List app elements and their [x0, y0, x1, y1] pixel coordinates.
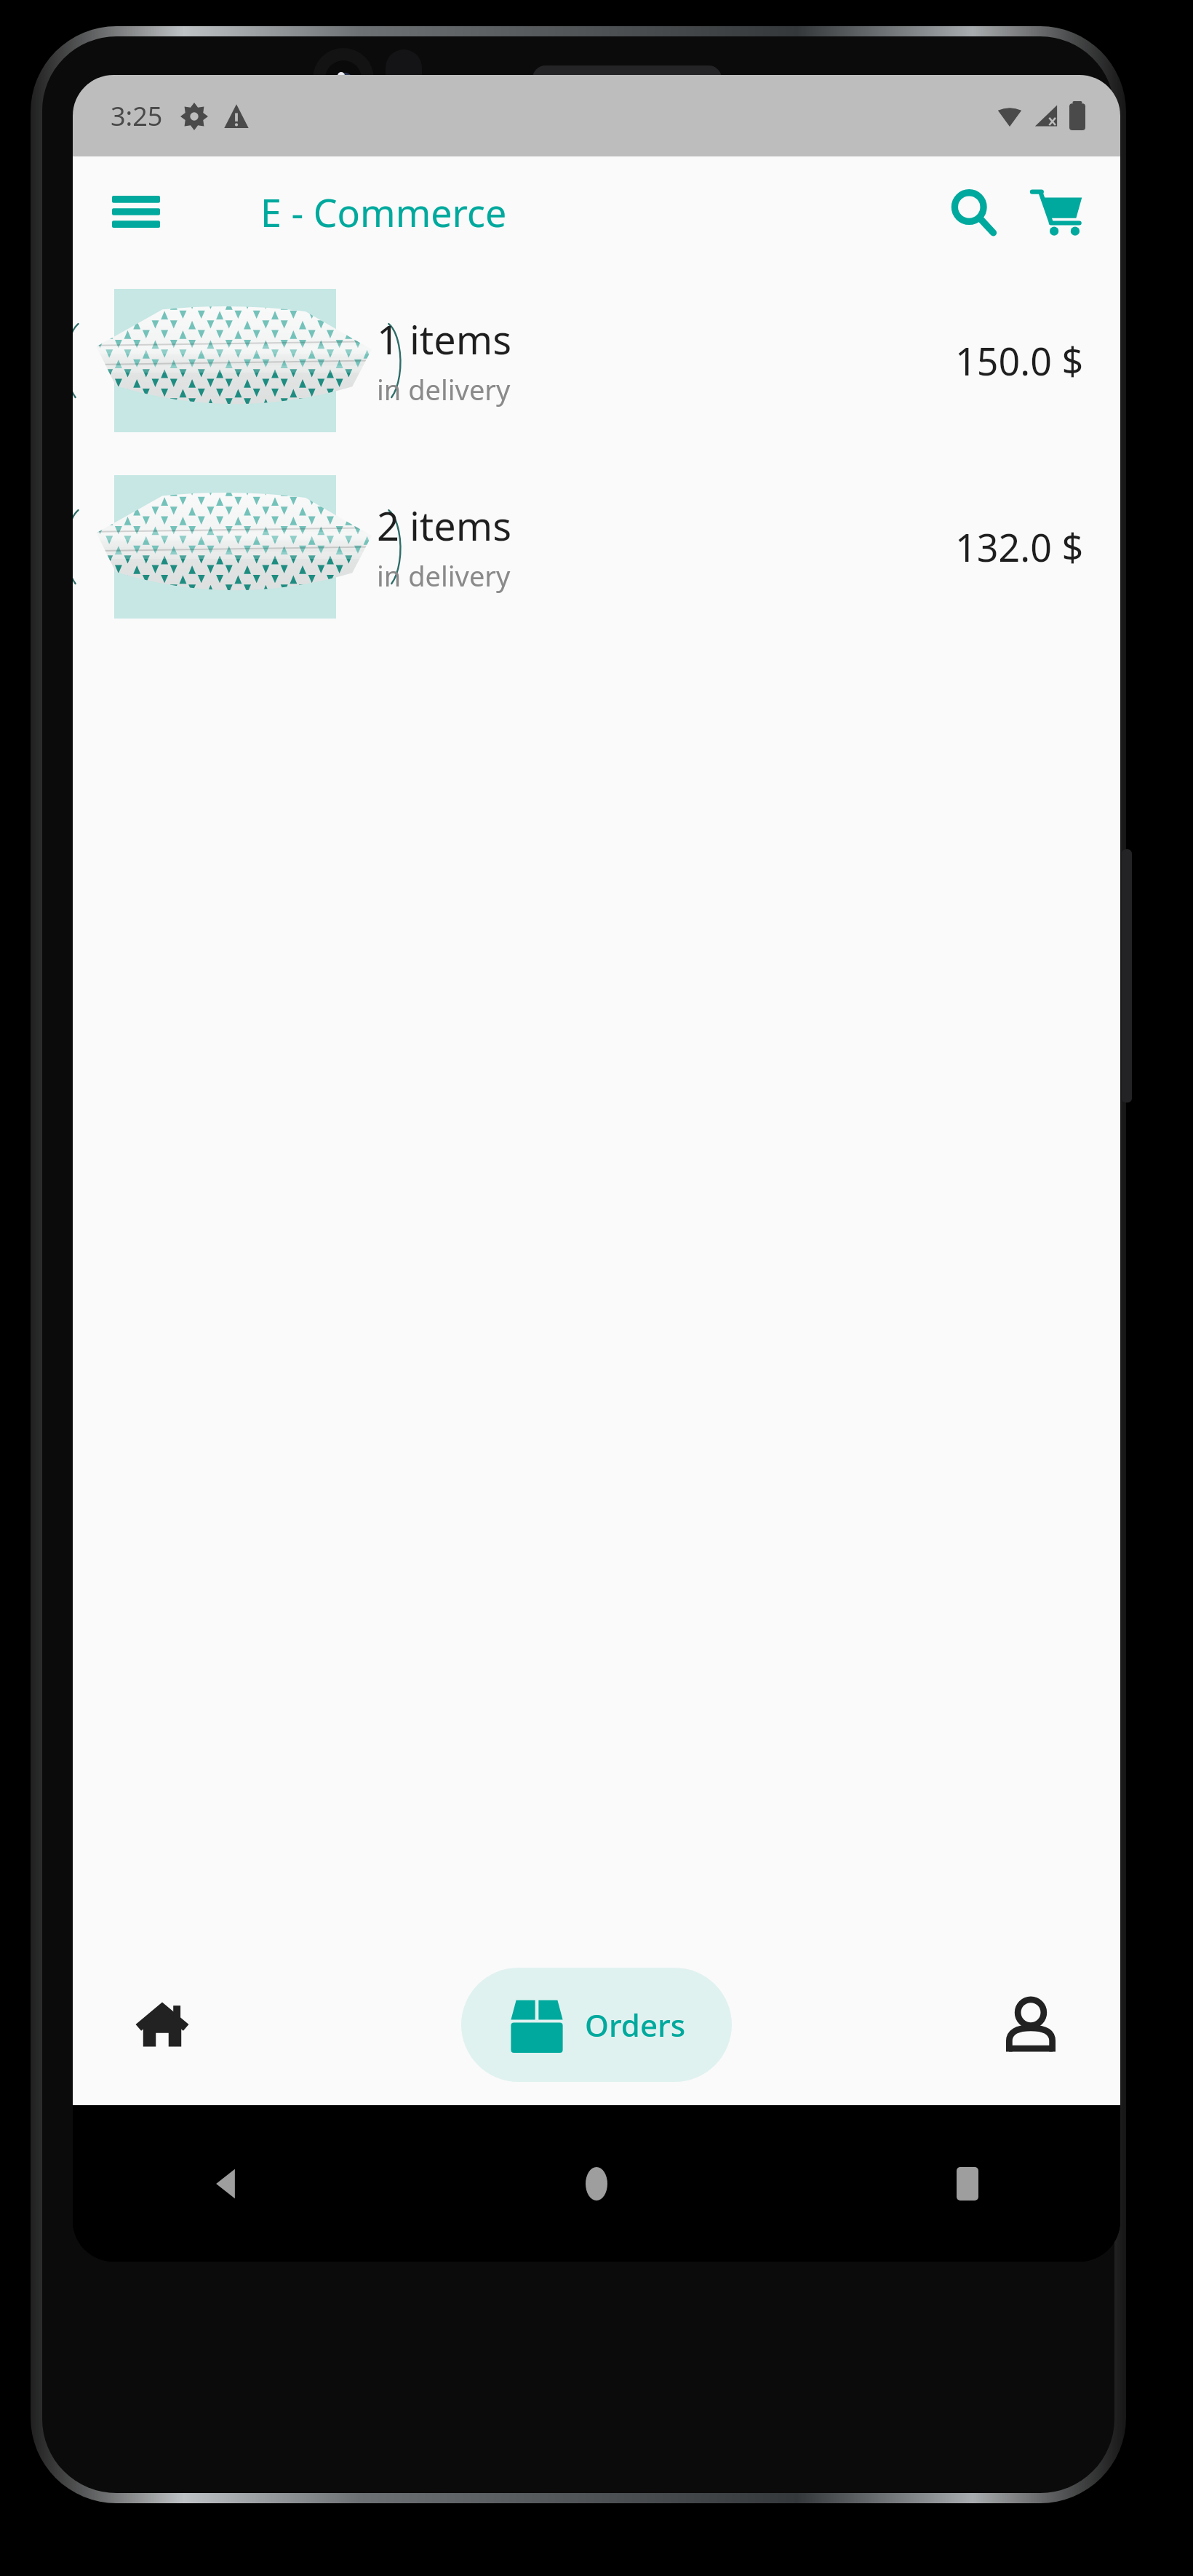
- button[interactable]: Recent apps: [924, 2140, 1011, 2227]
- button[interactable]: 1 items: [73, 267, 1120, 453]
- button[interactable]: Open navigation menu: [102, 178, 170, 246]
- staticText: E - Commerce: [260, 186, 507, 238]
- staticText: 2 items: [377, 498, 512, 552]
- button[interactable]: Home: [553, 2140, 640, 2227]
- button[interactable]: Home: [93, 1966, 231, 2083]
- button[interactable]: 2 items: [73, 453, 1120, 640]
- button[interactable]: Back: [182, 2140, 269, 2227]
- staticText: 1 items: [377, 312, 512, 366]
- button[interactable]: Profile: [962, 1966, 1100, 2083]
- staticText: in delivery: [377, 370, 511, 408]
- button[interactable]: Search: [937, 175, 1010, 248]
- staticText: in delivery: [377, 557, 511, 595]
- staticText: Orders: [585, 2004, 686, 2046]
- staticText: 150.0 $: [955, 335, 1084, 386]
- staticText: 3:25: [111, 98, 163, 134]
- staticText: 132.0 $: [955, 521, 1084, 573]
- button[interactable]: Orders: [461, 1968, 732, 2082]
- button[interactable]: Shopping cart: [1020, 175, 1093, 248]
